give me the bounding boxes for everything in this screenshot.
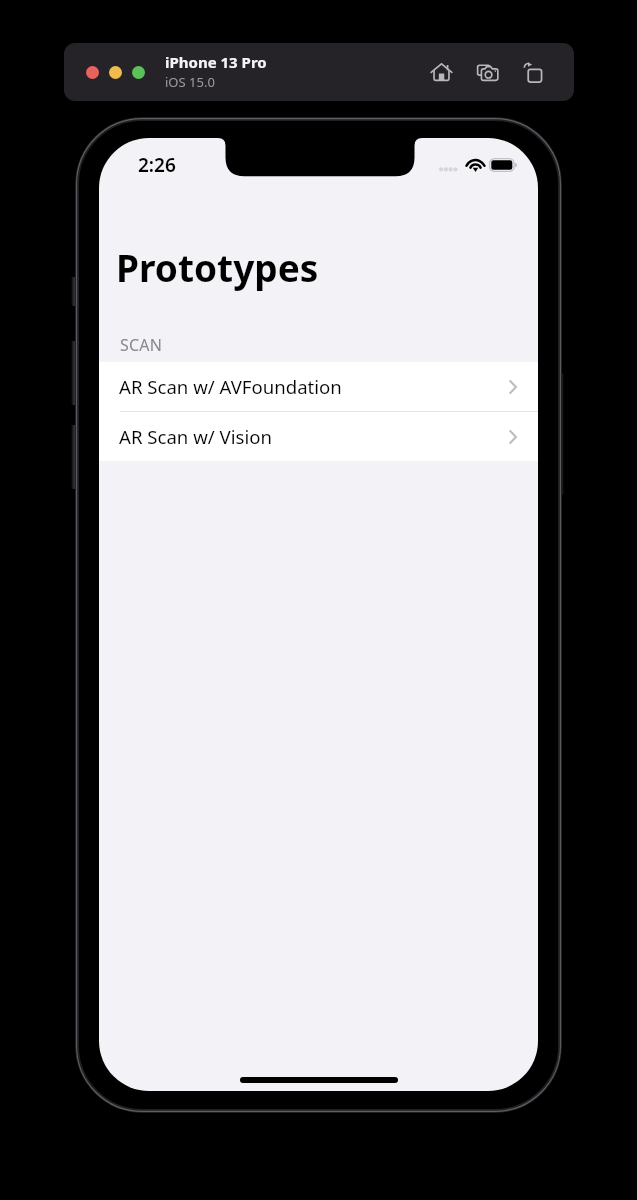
button[interactable]: Minimise window (109, 66, 122, 79)
button[interactable]: Screenshot (468, 53, 507, 92)
button[interactable]: Zoom window (132, 66, 145, 79)
button[interactable]: Close window (86, 66, 99, 79)
staticText: 2:26 (138, 152, 176, 178)
staticText: AR Scan w/ AVFoundation (119, 374, 342, 399)
button[interactable]: AR Scan w/ Vision (99, 412, 538, 461)
staticText: iPhone 13 Pro (165, 52, 267, 72)
staticText: SCAN (120, 334, 163, 356)
staticText: iOS 15.0 (165, 73, 215, 91)
staticText: AR Scan w/ Vision (119, 424, 272, 449)
button[interactable]: AR Scan w/ AVFoundation (99, 362, 538, 412)
button[interactable]: Home (422, 53, 461, 92)
button[interactable]: Rotate device (514, 53, 553, 92)
staticText: Prototypes (116, 242, 319, 292)
